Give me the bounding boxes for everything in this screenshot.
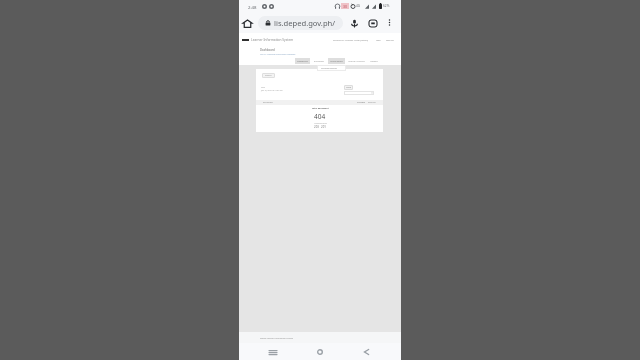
staticText: Enrolment [314, 60, 324, 63]
staticText: 203 [314, 125, 319, 129]
staticText: select SY 2019-2020 [345, 92, 368, 95]
button[interactable]: Collapse [357, 101, 365, 104]
button[interactable]: lis.deped.gov.ph/da [258, 16, 343, 30]
staticText: Support [370, 60, 378, 63]
button[interactable]: select SY 2019-2020 [344, 91, 374, 95]
button[interactable]: School Forms [328, 58, 345, 64]
button[interactable]: Certified Records [317, 65, 346, 71]
button[interactable]: Home [312, 343, 328, 360]
staticText: 201 [321, 125, 326, 129]
staticText: Dashboard [260, 48, 275, 52]
staticText: 62% [383, 4, 390, 8]
button[interactable]: Learner Accounts [346, 58, 367, 64]
staticText: Date [261, 86, 265, 88]
button[interactable]: Remove [368, 101, 376, 104]
button[interactable]: SCHOOL ID - SCHOOL NAME (ADMIN) [333, 39, 369, 42]
staticText: More [346, 86, 352, 89]
button[interactable]: Home [240, 16, 254, 30]
button[interactable]: Switch tabs [366, 16, 380, 30]
staticText: Male [314, 121, 320, 124]
button[interactable]: Enrolment [312, 58, 326, 64]
staticText: 2:48 [248, 4, 257, 10]
button[interactable]: Help [376, 39, 381, 42]
staticText: School Forms [330, 60, 343, 63]
staticText: LIS SY - Resume Classroom Advisory [260, 53, 296, 56]
button[interactable]: Recent apps [265, 343, 281, 360]
button[interactable]: Search [262, 73, 275, 78]
staticText: Deped Learner Information System [260, 337, 294, 340]
staticText: Sign out [386, 39, 394, 42]
staticText: Female [320, 121, 327, 124]
staticText: lis.deped.gov.ph/da [274, 18, 341, 28]
staticText: 30 [343, 4, 348, 9]
staticText: Remove [368, 101, 376, 104]
staticText: Help [376, 39, 381, 42]
staticText: SCHOOL ID - SCHOOL NAME (ADMIN) [333, 39, 369, 42]
button[interactable]: More [344, 85, 353, 90]
button[interactable]: Support [368, 58, 380, 64]
staticText: Dashboard [297, 60, 308, 63]
staticText: Search [265, 74, 272, 77]
staticText: Learner Information System [251, 38, 294, 42]
staticText: Certified Records [321, 67, 338, 70]
staticText: Enrolment [263, 101, 273, 104]
button[interactable]: Voice search [347, 16, 361, 30]
staticText: 4G [356, 4, 361, 8]
staticText: 404 [314, 112, 326, 121]
button[interactable]: Sign out [386, 39, 394, 42]
staticText: Learner Accounts [348, 60, 365, 63]
staticText: Total Enrolment [312, 107, 329, 110]
button[interactable]: Back [358, 343, 374, 360]
staticText: July 10, 2019 10:11:54 AM [261, 89, 283, 91]
button[interactable]: More options [383, 16, 395, 28]
staticText: Collapse [357, 101, 365, 104]
button[interactable]: Dashboard [295, 58, 310, 64]
